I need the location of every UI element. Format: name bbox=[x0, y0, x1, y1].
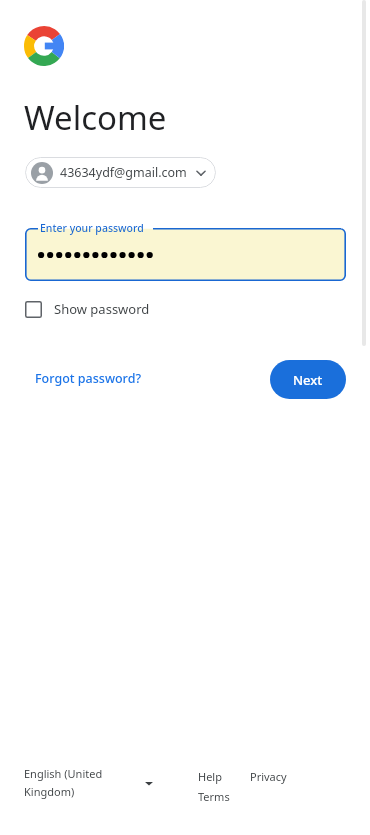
button[interactable]: Help bbox=[198, 769, 222, 784]
button[interactable]: 43634ydf@gmail.com bbox=[25, 157, 216, 188]
button[interactable] bbox=[25, 228, 346, 281]
staticText: Help bbox=[198, 769, 222, 784]
staticText: Show password bbox=[54, 300, 150, 318]
staticText: Forgot password? bbox=[35, 370, 141, 387]
button[interactable]: Terms bbox=[198, 789, 230, 804]
staticText: Enter your password bbox=[40, 221, 144, 235]
staticText: Next bbox=[293, 371, 323, 389]
staticText: English (United Kingdom) bbox=[24, 766, 134, 799]
staticText: Welcome bbox=[24, 95, 167, 140]
staticText: Privacy bbox=[250, 769, 287, 784]
other: Change language bbox=[142, 776, 156, 790]
button[interactable]: Privacy bbox=[250, 769, 287, 784]
staticText: Terms bbox=[198, 789, 230, 804]
button[interactable]: Next bbox=[270, 360, 346, 399]
staticText: 43634ydf@gmail.com bbox=[60, 164, 187, 181]
button[interactable]: Show password bbox=[25, 296, 150, 322]
button[interactable]: English (United Kingdom) bbox=[24, 766, 176, 799]
button[interactable]: Forgot password? bbox=[28, 367, 148, 390]
